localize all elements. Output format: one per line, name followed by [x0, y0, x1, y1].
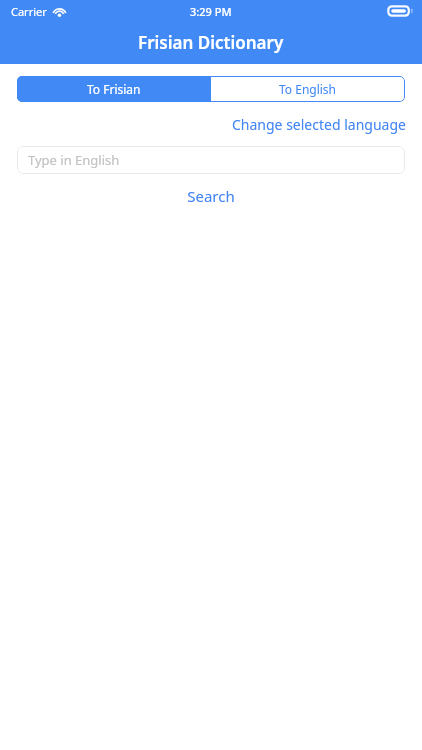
- button[interactable]: To Frisian: [17, 76, 211, 102]
- staticText: Search: [187, 186, 235, 206]
- staticText: Type in English: [28, 151, 120, 169]
- button[interactable]: To English: [211, 76, 405, 102]
- staticText: To English: [279, 81, 337, 97]
- staticText: Carrier: [11, 4, 47, 19]
- button[interactable]: Type in English: [17, 146, 405, 174]
- staticText: Change selected language: [232, 115, 406, 134]
- staticText: 3:29 PM: [190, 4, 232, 19]
- button[interactable]: Change selected language: [232, 115, 406, 134]
- staticText: Frisian Dictionary: [138, 31, 284, 54]
- button[interactable]: Search: [173, 184, 249, 208]
- staticText: To Frisian: [87, 81, 141, 97]
